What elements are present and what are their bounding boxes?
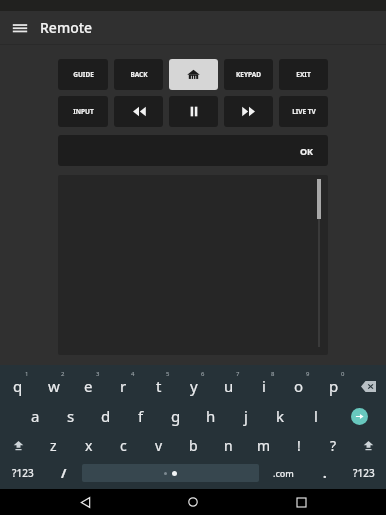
- button[interactable]: Enter: [333, 401, 386, 431]
- button[interactable]: h: [193, 401, 228, 431]
- staticText: .: [323, 464, 327, 482]
- button[interactable]: INPUT: [58, 96, 108, 127]
- button[interactable]: e: [71, 371, 106, 401]
- button[interactable]: o: [281, 371, 316, 401]
- button[interactable]: v: [141, 431, 176, 459]
- button[interactable]: y: [176, 371, 211, 401]
- staticText: 7: [236, 370, 240, 378]
- staticText: ?: [330, 436, 337, 455]
- button[interactable]: !: [281, 431, 316, 459]
- button[interactable]: q: [0, 371, 36, 401]
- staticText: INPUT: [73, 107, 94, 116]
- staticText: GUIDE: [73, 70, 94, 79]
- button[interactable]: x: [71, 431, 106, 459]
- button[interactable]: Shift: [351, 431, 386, 459]
- button[interactable]: .com: [259, 459, 308, 487]
- staticText: a: [31, 406, 40, 426]
- staticText: /: [61, 464, 67, 482]
- button[interactable]: ?: [316, 431, 351, 459]
- button[interactable]: r: [106, 371, 141, 401]
- staticText: j: [244, 406, 248, 426]
- staticText: s: [67, 406, 75, 426]
- button[interactable]: d: [88, 401, 123, 431]
- button[interactable]: Pause: [169, 96, 218, 127]
- button[interactable]: f: [123, 401, 158, 431]
- staticText: t: [156, 376, 162, 396]
- button[interactable]: a: [18, 401, 53, 431]
- button[interactable]: j: [228, 401, 263, 431]
- staticText: e: [84, 376, 93, 396]
- button[interactable]: i: [246, 371, 281, 401]
- staticText: ?123: [353, 466, 375, 480]
- button[interactable]: l: [298, 401, 333, 431]
- staticText: h: [206, 406, 216, 426]
- staticText: 1: [25, 370, 29, 378]
- button[interactable]: KEYPAD: [224, 59, 273, 90]
- staticText: q: [13, 376, 23, 396]
- button[interactable]: p: [316, 371, 351, 401]
- staticText: g: [171, 406, 181, 426]
- staticText: 4: [131, 370, 135, 378]
- button[interactable]: k: [263, 401, 298, 431]
- button[interactable]: s: [53, 401, 88, 431]
- staticText: w: [48, 376, 60, 396]
- staticText: !: [297, 436, 301, 455]
- staticText: 0: [341, 370, 345, 378]
- staticText: BACK: [130, 70, 148, 79]
- button[interactable]: Back: [62, 489, 108, 515]
- staticText: 8: [271, 370, 275, 378]
- button[interactable]: LIVE TV: [279, 96, 328, 127]
- staticText: .com: [273, 467, 294, 479]
- button[interactable]: .: [308, 459, 341, 487]
- button[interactable]: u: [211, 371, 246, 401]
- button[interactable]: /: [45, 459, 82, 487]
- button[interactable]: ?123: [0, 459, 45, 487]
- staticText: o: [294, 376, 304, 396]
- staticText: ?123: [12, 466, 34, 480]
- staticText: x: [85, 436, 93, 455]
- staticText: 5: [166, 370, 170, 378]
- button[interactable]: BACK: [114, 59, 163, 90]
- staticText: d: [101, 406, 111, 426]
- button[interactable]: Fast forward: [224, 96, 273, 127]
- staticText: 2: [61, 370, 65, 378]
- button[interactable]: ?123: [341, 459, 386, 487]
- staticText: KEYPAD: [236, 70, 261, 79]
- staticText: u: [224, 376, 234, 396]
- button[interactable]: EXIT: [279, 59, 328, 90]
- staticText: l: [314, 406, 318, 426]
- button[interactable]: c: [106, 431, 141, 459]
- button[interactable]: m: [246, 431, 281, 459]
- staticText: p: [329, 376, 339, 396]
- button[interactable]: Rewind: [114, 96, 163, 127]
- staticText: OK: [300, 145, 314, 157]
- button[interactable]: Home: [170, 489, 216, 515]
- button[interactable]: Open navigation menu: [0, 11, 40, 44]
- staticText: LIVE TV: [292, 107, 316, 116]
- button[interactable]: Space: [82, 464, 259, 482]
- staticText: 6: [201, 370, 205, 378]
- button[interactable]: OK: [58, 135, 328, 166]
- staticText: k: [276, 406, 285, 426]
- staticText: i: [262, 376, 266, 396]
- staticText: r: [120, 376, 127, 396]
- button[interactable]: t: [141, 371, 176, 401]
- staticText: v: [155, 436, 163, 455]
- staticText: f: [138, 406, 144, 426]
- button[interactable]: Shift: [0, 431, 36, 459]
- button[interactable]: GUIDE: [58, 59, 108, 90]
- button[interactable]: n: [211, 431, 246, 459]
- button[interactable]: Backspace: [351, 371, 386, 401]
- staticText: 3: [96, 370, 100, 378]
- button[interactable]: Home: [169, 59, 218, 90]
- staticText: z: [50, 436, 57, 455]
- staticText: n: [224, 436, 233, 455]
- button[interactable]: b: [176, 431, 211, 459]
- staticText: y: [190, 376, 198, 396]
- button[interactable]: w: [36, 371, 71, 401]
- button[interactable]: z: [36, 431, 71, 459]
- button[interactable]: [58, 175, 328, 355]
- button[interactable]: g: [158, 401, 193, 431]
- staticText: m: [257, 436, 271, 455]
- button[interactable]: Recent apps: [278, 489, 324, 515]
